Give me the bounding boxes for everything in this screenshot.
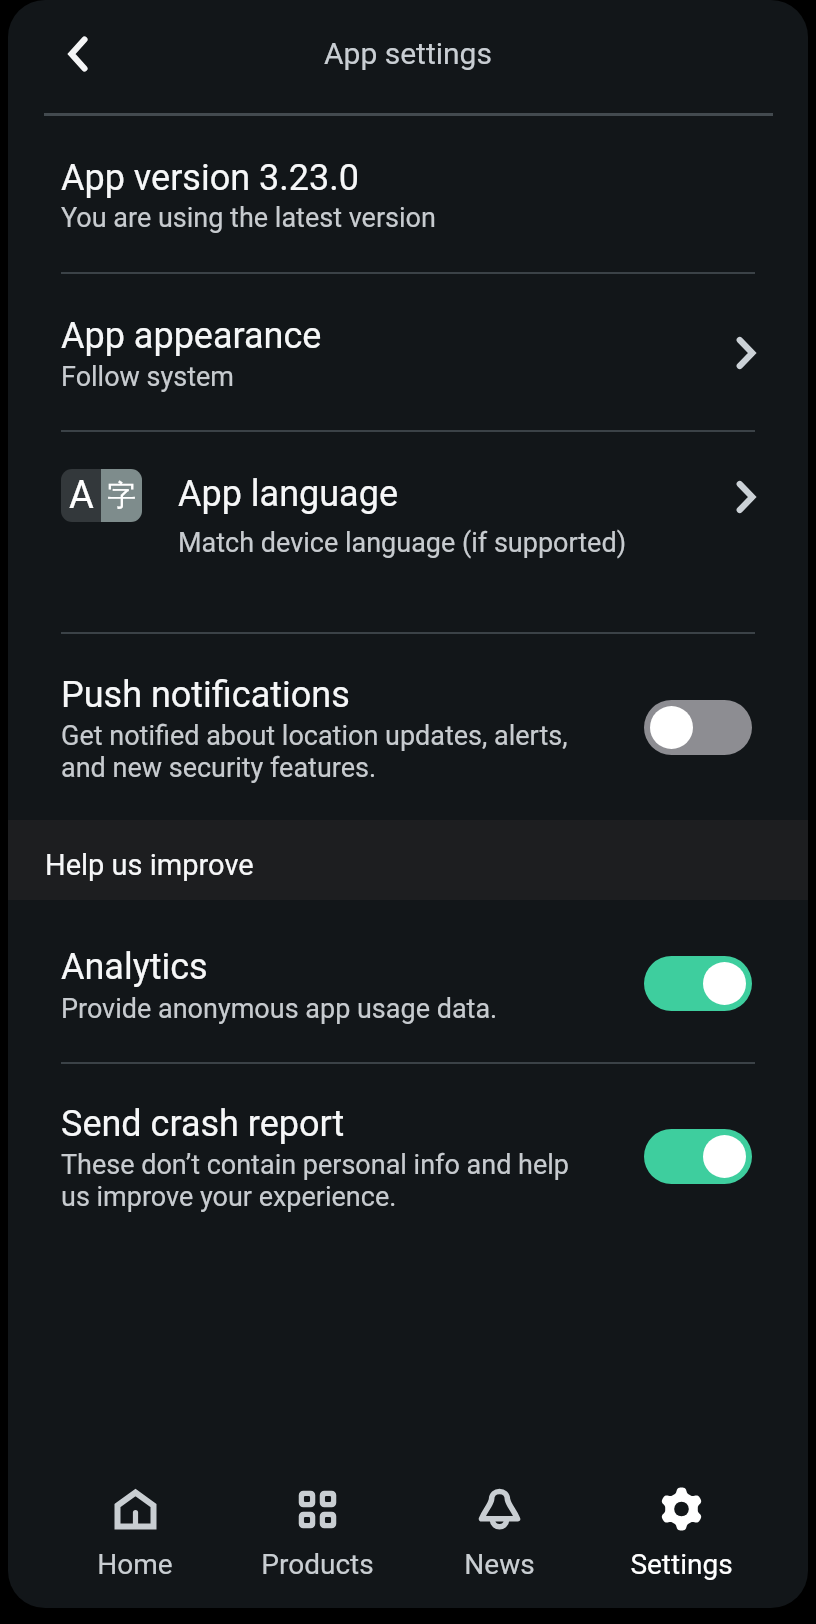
staticText: These don’t contain personal info and he… bbox=[61, 1149, 601, 1213]
staticText: 字 bbox=[107, 477, 136, 514]
button[interactable]: Push notifications bbox=[8, 634, 808, 820]
staticText: App language bbox=[178, 473, 399, 515]
staticText: Provide anonymous app usage data. bbox=[61, 993, 498, 1025]
staticText: Follow system bbox=[61, 361, 235, 393]
button[interactable]: App appearance bbox=[8, 274, 808, 430]
button[interactable]: Send crash report bbox=[8, 1064, 808, 1213]
staticText: Products bbox=[261, 1548, 374, 1581]
button[interactable]: Disabled bbox=[644, 700, 752, 755]
button[interactable]: Settings bbox=[590, 1464, 772, 1608]
button[interactable]: News bbox=[408, 1464, 590, 1608]
other: Open bbox=[722, 329, 770, 377]
staticText: Match device language (if supported) bbox=[178, 527, 627, 559]
staticText: Settings bbox=[630, 1548, 733, 1581]
button[interactable]: Enabled bbox=[644, 1129, 752, 1184]
button[interactable]: Home bbox=[44, 1464, 226, 1608]
staticText: Analytics bbox=[61, 946, 208, 988]
staticText: Home bbox=[97, 1548, 173, 1581]
other: Open bbox=[722, 473, 770, 521]
staticText: App settings bbox=[324, 36, 492, 71]
staticText: Get notified about location updates, ale… bbox=[61, 720, 601, 784]
button[interactable]: Analytics bbox=[8, 900, 808, 1062]
staticText: App version 3.23.0 bbox=[61, 157, 359, 199]
staticText: News bbox=[464, 1548, 535, 1581]
staticText: App appearance bbox=[61, 315, 322, 357]
button[interactable]: A bbox=[8, 432, 808, 632]
staticText: Help us improve bbox=[45, 848, 254, 882]
staticText: You are using the latest version bbox=[61, 202, 436, 234]
button[interactable]: Back bbox=[34, 10, 122, 98]
button[interactable]: Enabled bbox=[644, 956, 752, 1011]
staticText: Send crash report bbox=[61, 1103, 345, 1145]
button[interactable]: Products bbox=[226, 1464, 408, 1608]
staticText: A bbox=[69, 473, 94, 518]
staticText: Push notifications bbox=[61, 674, 350, 716]
